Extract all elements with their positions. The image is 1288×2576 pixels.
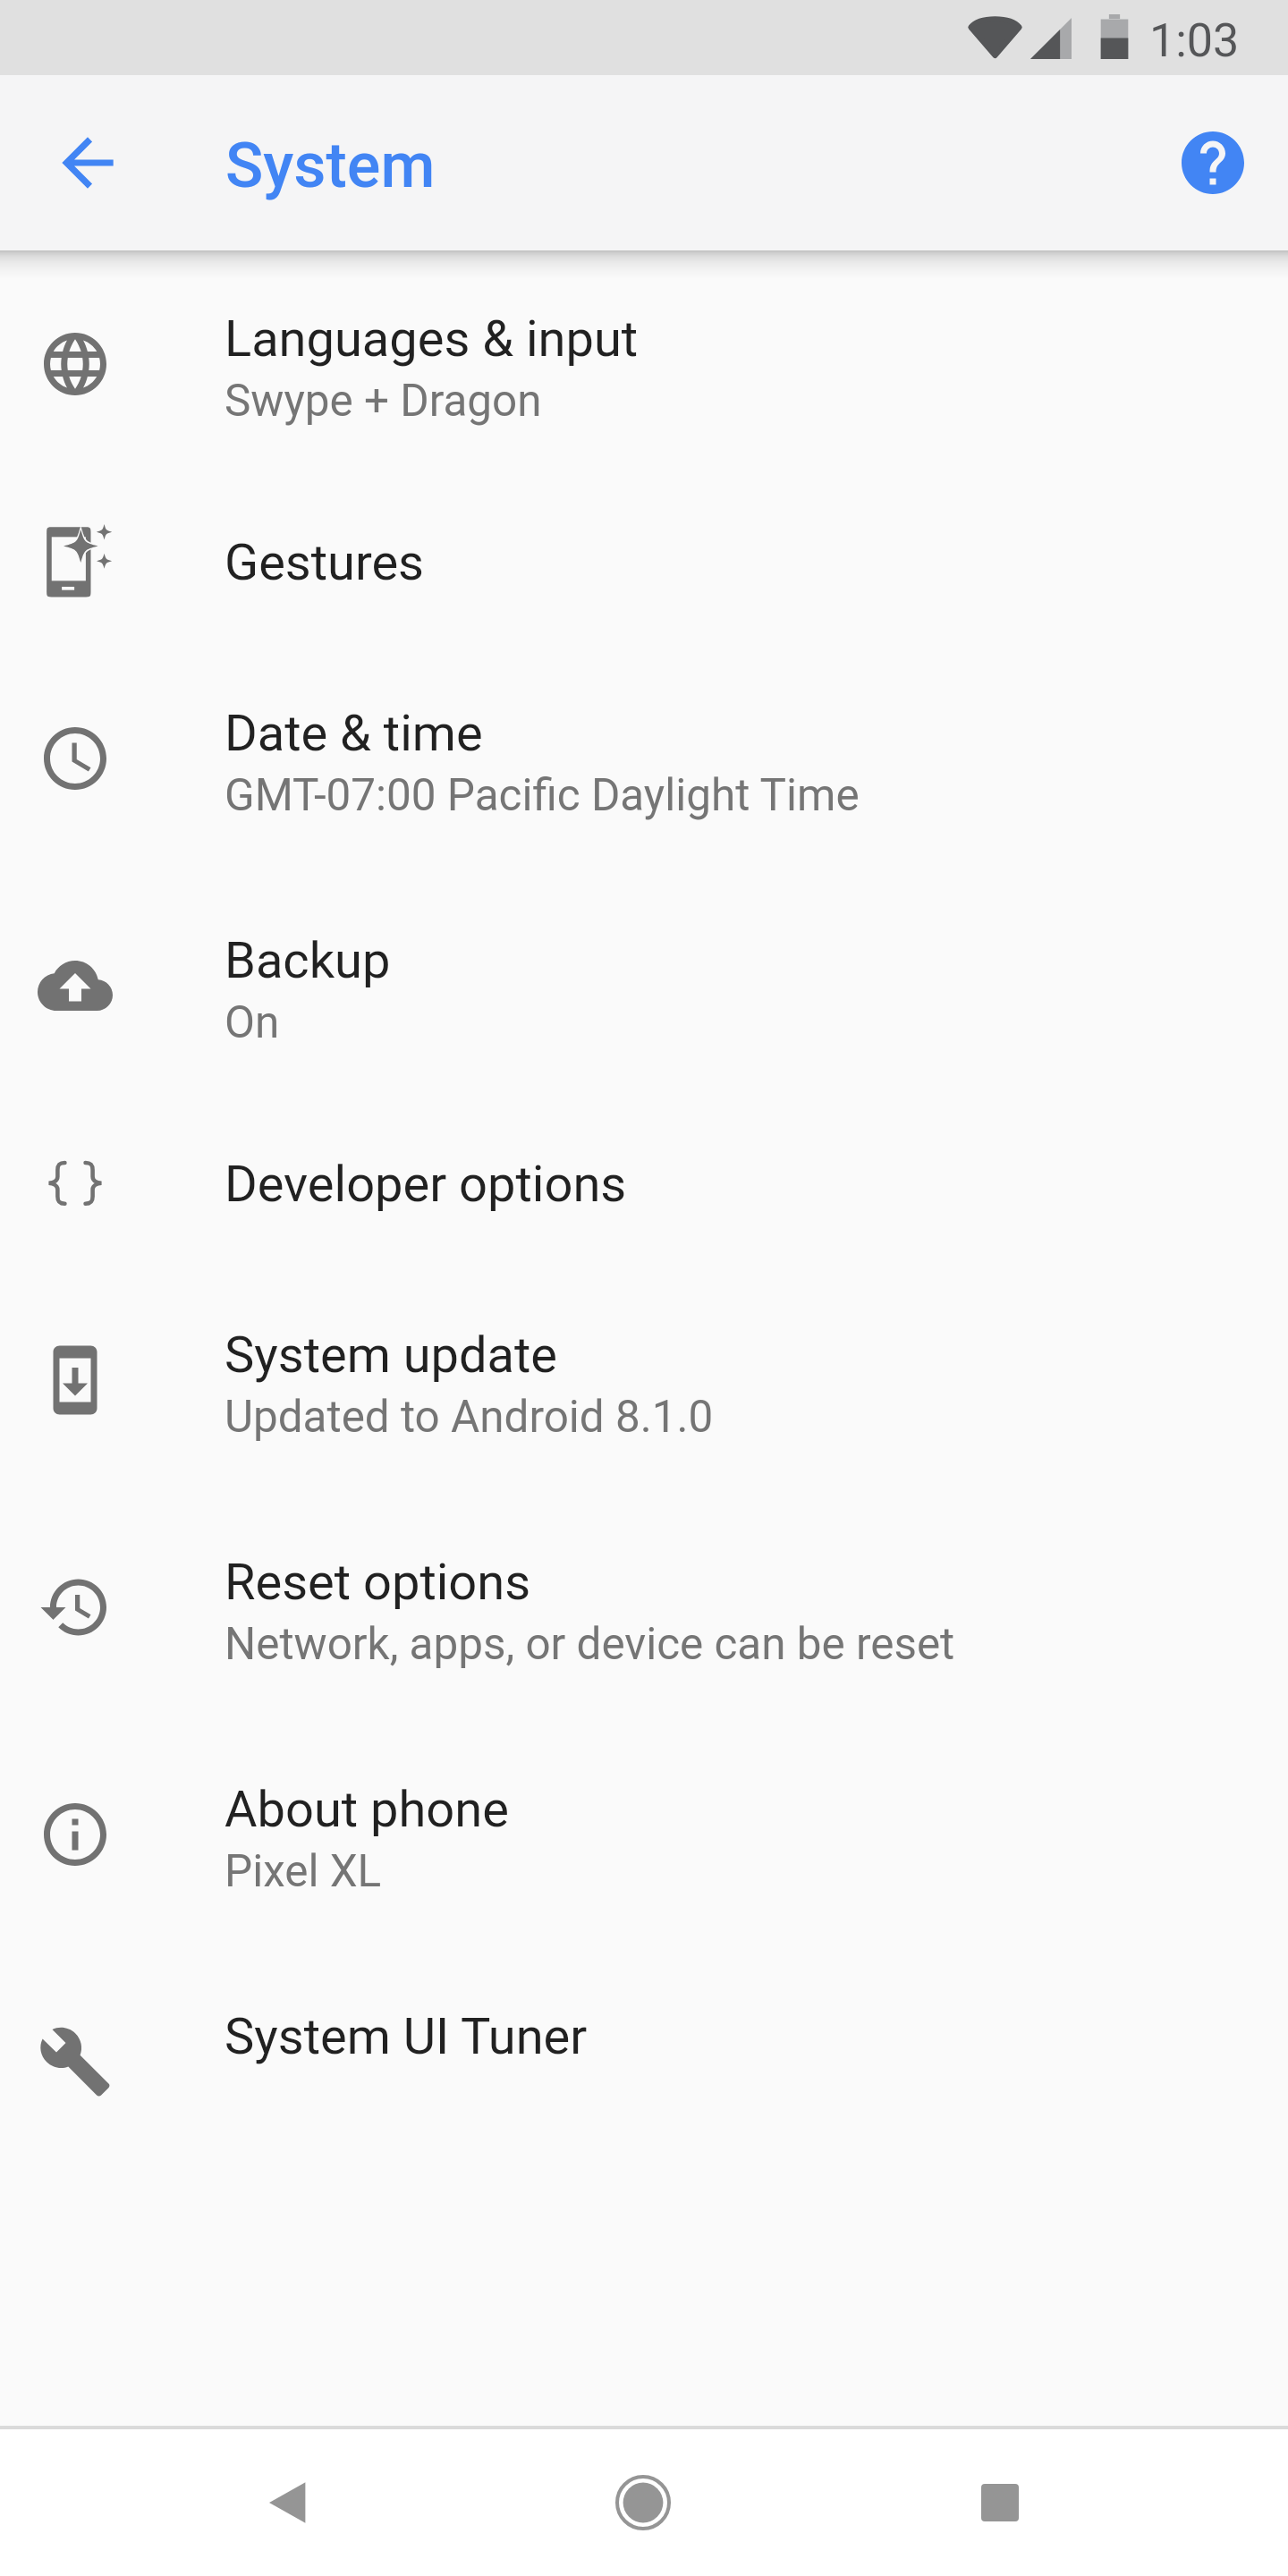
staticText: Swype + Dragon bbox=[225, 375, 542, 427]
button[interactable]: Backup bbox=[0, 872, 1288, 1099]
staticText: Updated to Android 8.1.0 bbox=[225, 1391, 714, 1443]
button[interactable]: Help bbox=[1171, 121, 1255, 205]
staticText: Backup bbox=[225, 931, 391, 990]
staticText: Date & time bbox=[225, 704, 483, 763]
button[interactable]: Developer options bbox=[0, 1099, 1288, 1267]
staticText: Network, apps, or device can be reset bbox=[225, 1618, 955, 1670]
button[interactable]: System UI Tuner bbox=[0, 1948, 1288, 2175]
button[interactable]: Languages & input bbox=[0, 250, 1288, 478]
button[interactable]: System update bbox=[0, 1267, 1288, 1494]
staticText: About phone bbox=[225, 1780, 509, 1839]
button[interactable]: Gestures bbox=[0, 478, 1288, 645]
staticText: On bbox=[225, 996, 280, 1048]
staticText: Languages & input bbox=[225, 309, 639, 369]
button[interactable]: Reset options bbox=[0, 1494, 1288, 1721]
button[interactable]: About phone bbox=[0, 1721, 1288, 1948]
staticText: System bbox=[225, 129, 436, 202]
button[interactable]: Recent apps bbox=[963, 2429, 1035, 2576]
staticText: Pixel XL bbox=[225, 1845, 382, 1897]
staticText: Developer options bbox=[225, 1155, 627, 1214]
button[interactable]: Navigate up bbox=[47, 122, 129, 204]
button[interactable]: Home bbox=[607, 2429, 679, 2576]
staticText: 1:03 bbox=[1149, 13, 1240, 68]
button[interactable]: Date & time bbox=[0, 645, 1288, 872]
staticText: Gestures bbox=[225, 533, 424, 592]
button[interactable]: Back bbox=[251, 2429, 323, 2576]
staticText: System update bbox=[225, 1326, 558, 1385]
staticText: GMT-07:00 Pacific Daylight Time bbox=[225, 769, 860, 821]
staticText: Reset options bbox=[225, 1553, 531, 1612]
staticText: System UI Tuner bbox=[225, 2007, 588, 2066]
